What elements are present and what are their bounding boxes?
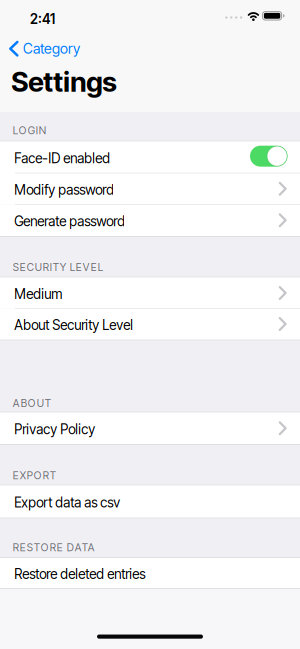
button[interactable]: Face-ID enabled: [250, 146, 288, 167]
button[interactable]: Restore deleted entries: [0, 558, 300, 588]
staticText: Modify password: [14, 182, 114, 198]
staticText: LOGIN: [13, 124, 46, 136]
staticText: RESTORE DATA: [13, 541, 95, 554]
staticText: Export data as csv: [14, 495, 120, 510]
button[interactable]: Privacy Policy: [0, 412, 300, 444]
staticText: EXPORT: [13, 469, 56, 481]
button[interactable]: Medium: [0, 277, 300, 308]
staticText: Privacy Policy: [14, 421, 95, 437]
button[interactable]: Category: [9, 39, 80, 59]
button[interactable]: Face-ID enabled: [0, 141, 300, 173]
staticText: SECURITY LEVEL: [13, 261, 103, 273]
staticText: Settings: [11, 66, 117, 98]
staticText: ABOUT: [13, 397, 51, 409]
staticText: Face-ID enabled: [14, 150, 110, 166]
staticText: Restore deleted entries: [14, 566, 145, 582]
button[interactable]: Generate password: [0, 204, 300, 236]
staticText: 2:41: [30, 11, 55, 27]
button[interactable]: Export data as csv: [0, 485, 300, 517]
button[interactable]: About Security Level: [0, 308, 300, 339]
staticText: About Security Level: [14, 317, 133, 333]
staticText: Generate password: [14, 213, 125, 229]
button[interactable]: Modify password: [0, 173, 300, 204]
staticText: Medium: [14, 286, 62, 302]
staticText: Category: [23, 40, 80, 57]
